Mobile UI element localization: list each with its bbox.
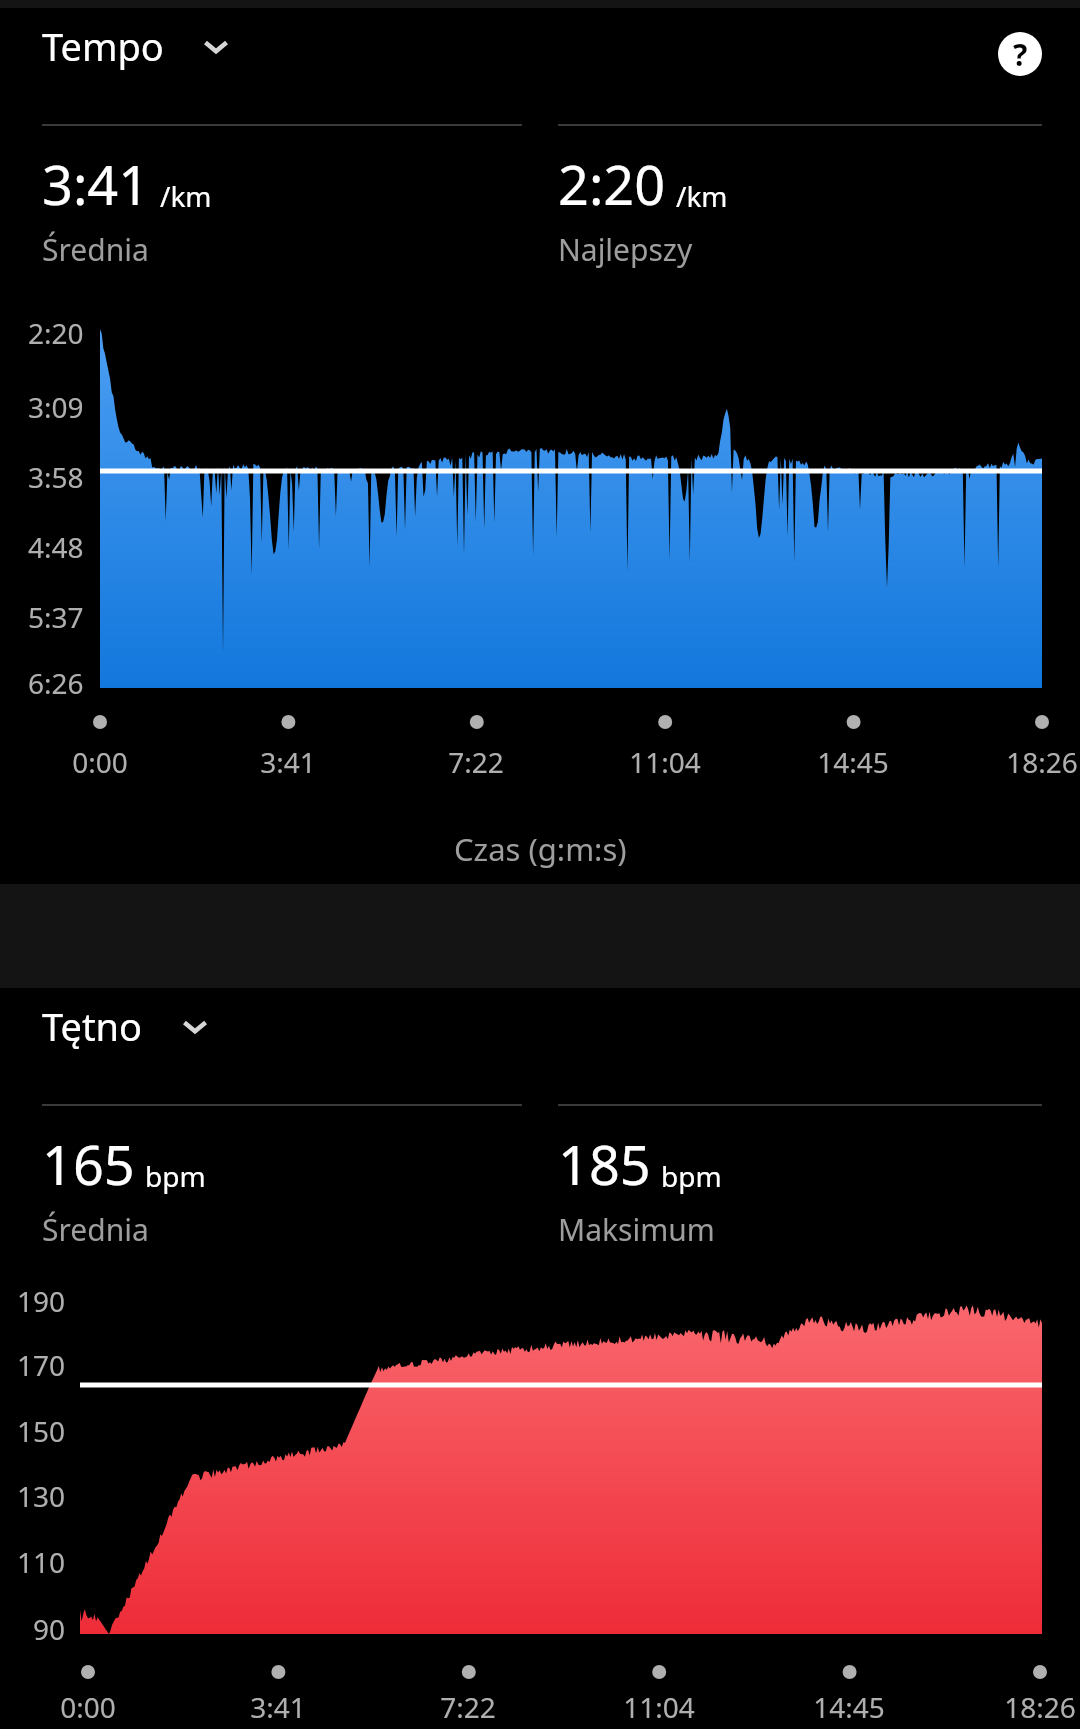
staticText: 2:20 xyxy=(558,147,666,221)
staticText: 130 xyxy=(17,1477,66,1515)
staticText: bpm xyxy=(145,1157,206,1195)
staticText: Średnia xyxy=(42,229,149,270)
staticText: Tempo xyxy=(42,20,164,72)
staticText: 4:48 xyxy=(28,528,84,566)
staticText: 0:00 xyxy=(72,743,128,781)
staticText: 18:26 xyxy=(1004,1688,1076,1726)
staticText: 190 xyxy=(17,1282,66,1320)
button[interactable]: Pomoc xyxy=(988,22,1052,86)
staticText: /km xyxy=(160,177,212,215)
staticText: 18:26 xyxy=(1006,743,1078,781)
staticText: 11:04 xyxy=(623,1688,695,1726)
staticText: 14:45 xyxy=(817,743,889,781)
staticText: 3:41 xyxy=(250,1688,306,1726)
staticText: 2:20 xyxy=(28,314,84,352)
staticText: 5:37 xyxy=(28,598,84,636)
staticText: 11:04 xyxy=(629,743,701,781)
staticText: Tętno xyxy=(42,1000,143,1052)
staticText: 165 xyxy=(42,1127,135,1201)
staticText: 0:00 xyxy=(60,1688,116,1726)
staticText: 3:09 xyxy=(28,388,84,426)
staticText: 3:58 xyxy=(28,458,84,496)
staticText: 14:45 xyxy=(813,1688,885,1726)
staticText: 7:22 xyxy=(448,743,504,781)
button[interactable]: Tempo xyxy=(0,8,1080,84)
staticText: 7:22 xyxy=(440,1688,496,1726)
staticText: bpm xyxy=(661,1157,722,1195)
staticText: Czas (g:m:s) xyxy=(454,828,627,870)
staticText: Maksimum xyxy=(558,1209,715,1250)
staticText: ? xyxy=(1013,34,1028,75)
staticText: Średnia xyxy=(42,1209,149,1250)
staticText: 3:41 xyxy=(260,743,316,781)
staticText: 6:26 xyxy=(28,664,84,702)
staticText: Najlepszy xyxy=(558,229,693,270)
staticText: 3:41 xyxy=(42,147,150,221)
staticText: 185 xyxy=(558,1127,651,1201)
staticText: 90 xyxy=(33,1610,66,1648)
staticText: 110 xyxy=(17,1543,66,1581)
staticText: 150 xyxy=(17,1412,66,1450)
staticText: 170 xyxy=(17,1346,66,1384)
button[interactable]: Tętno xyxy=(0,988,1080,1064)
staticText: /km xyxy=(676,177,728,215)
